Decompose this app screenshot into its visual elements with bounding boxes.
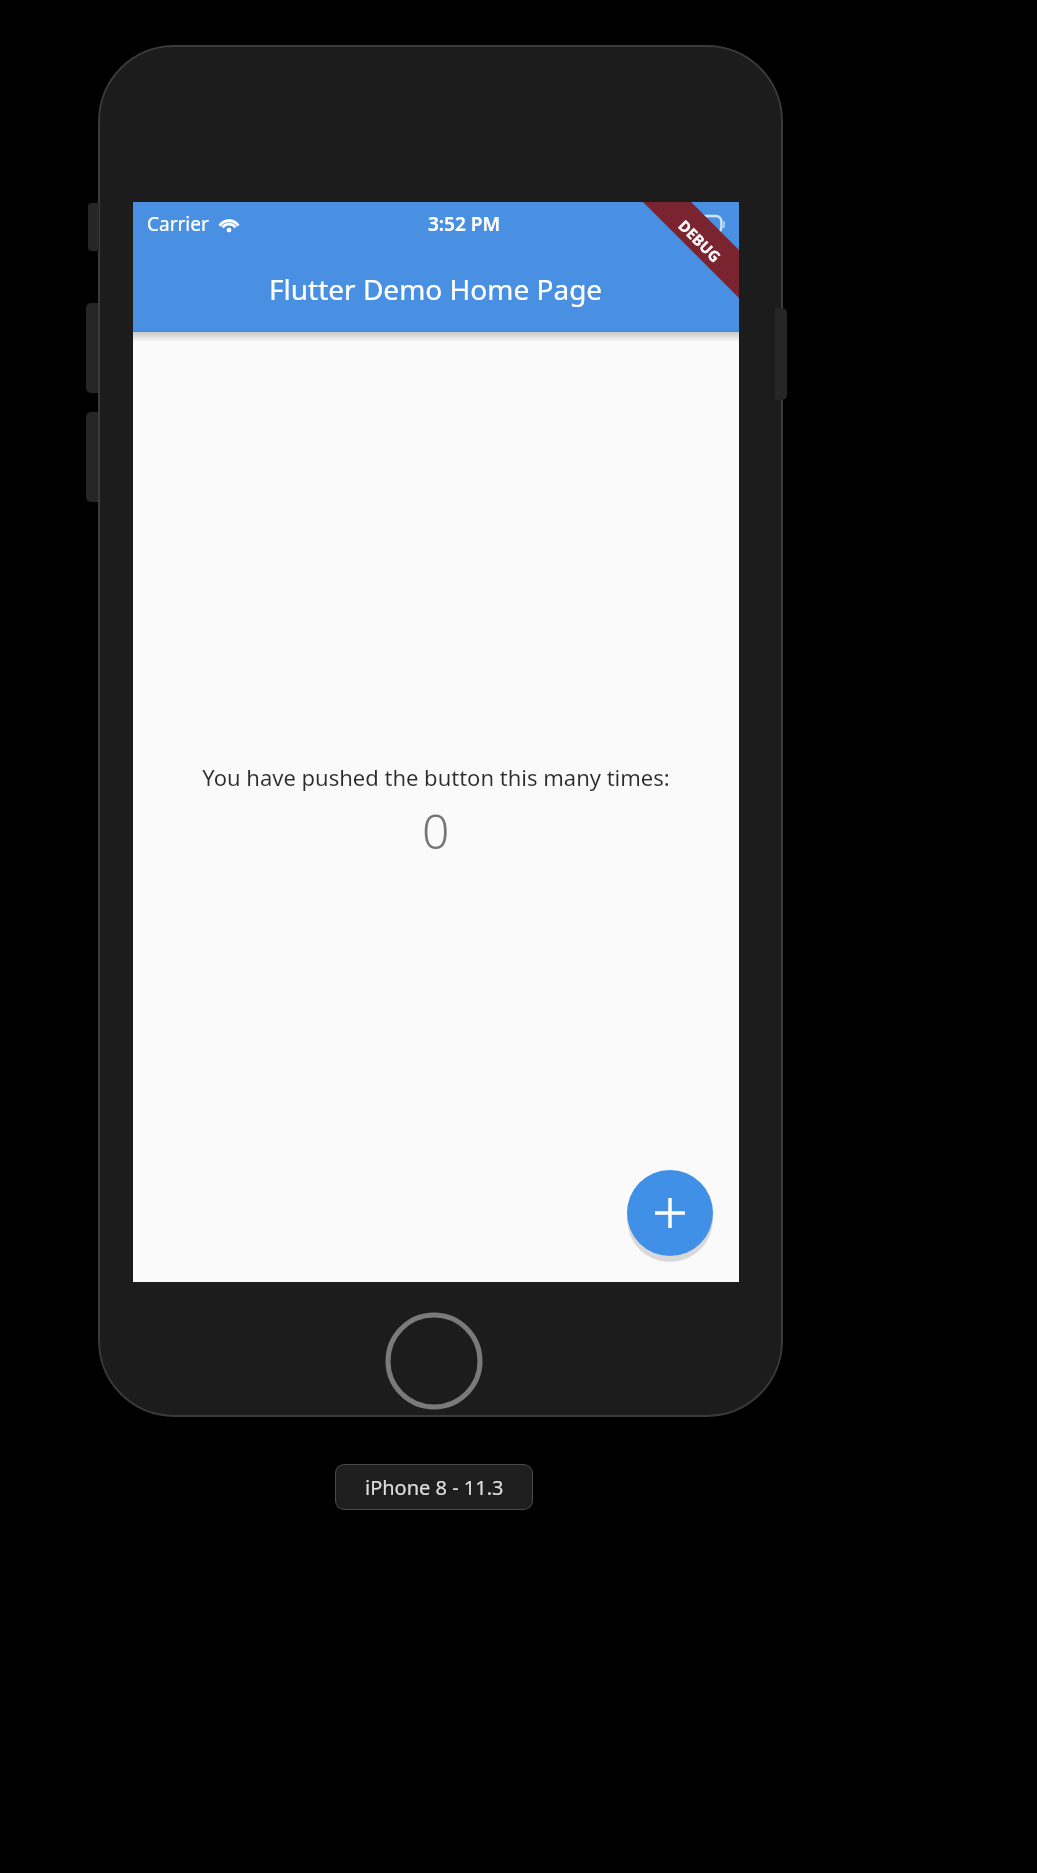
- button[interactable]: Increment: [627, 1170, 713, 1256]
- staticText: 0: [422, 798, 450, 863]
- staticText: DEBUG: [674, 215, 725, 266]
- button[interactable]: Home: [385, 1312, 483, 1410]
- staticText: iPhone 8 - 11.3: [365, 1474, 504, 1501]
- staticText: You have pushed the button this many tim…: [202, 762, 670, 792]
- staticText: Carrier: [147, 211, 209, 237]
- staticText: 3:52 PM: [428, 211, 501, 237]
- staticText: Flutter Demo Home Page: [269, 270, 603, 308]
- button[interactable]: iPhone 8 - 11.3: [335, 1464, 533, 1510]
